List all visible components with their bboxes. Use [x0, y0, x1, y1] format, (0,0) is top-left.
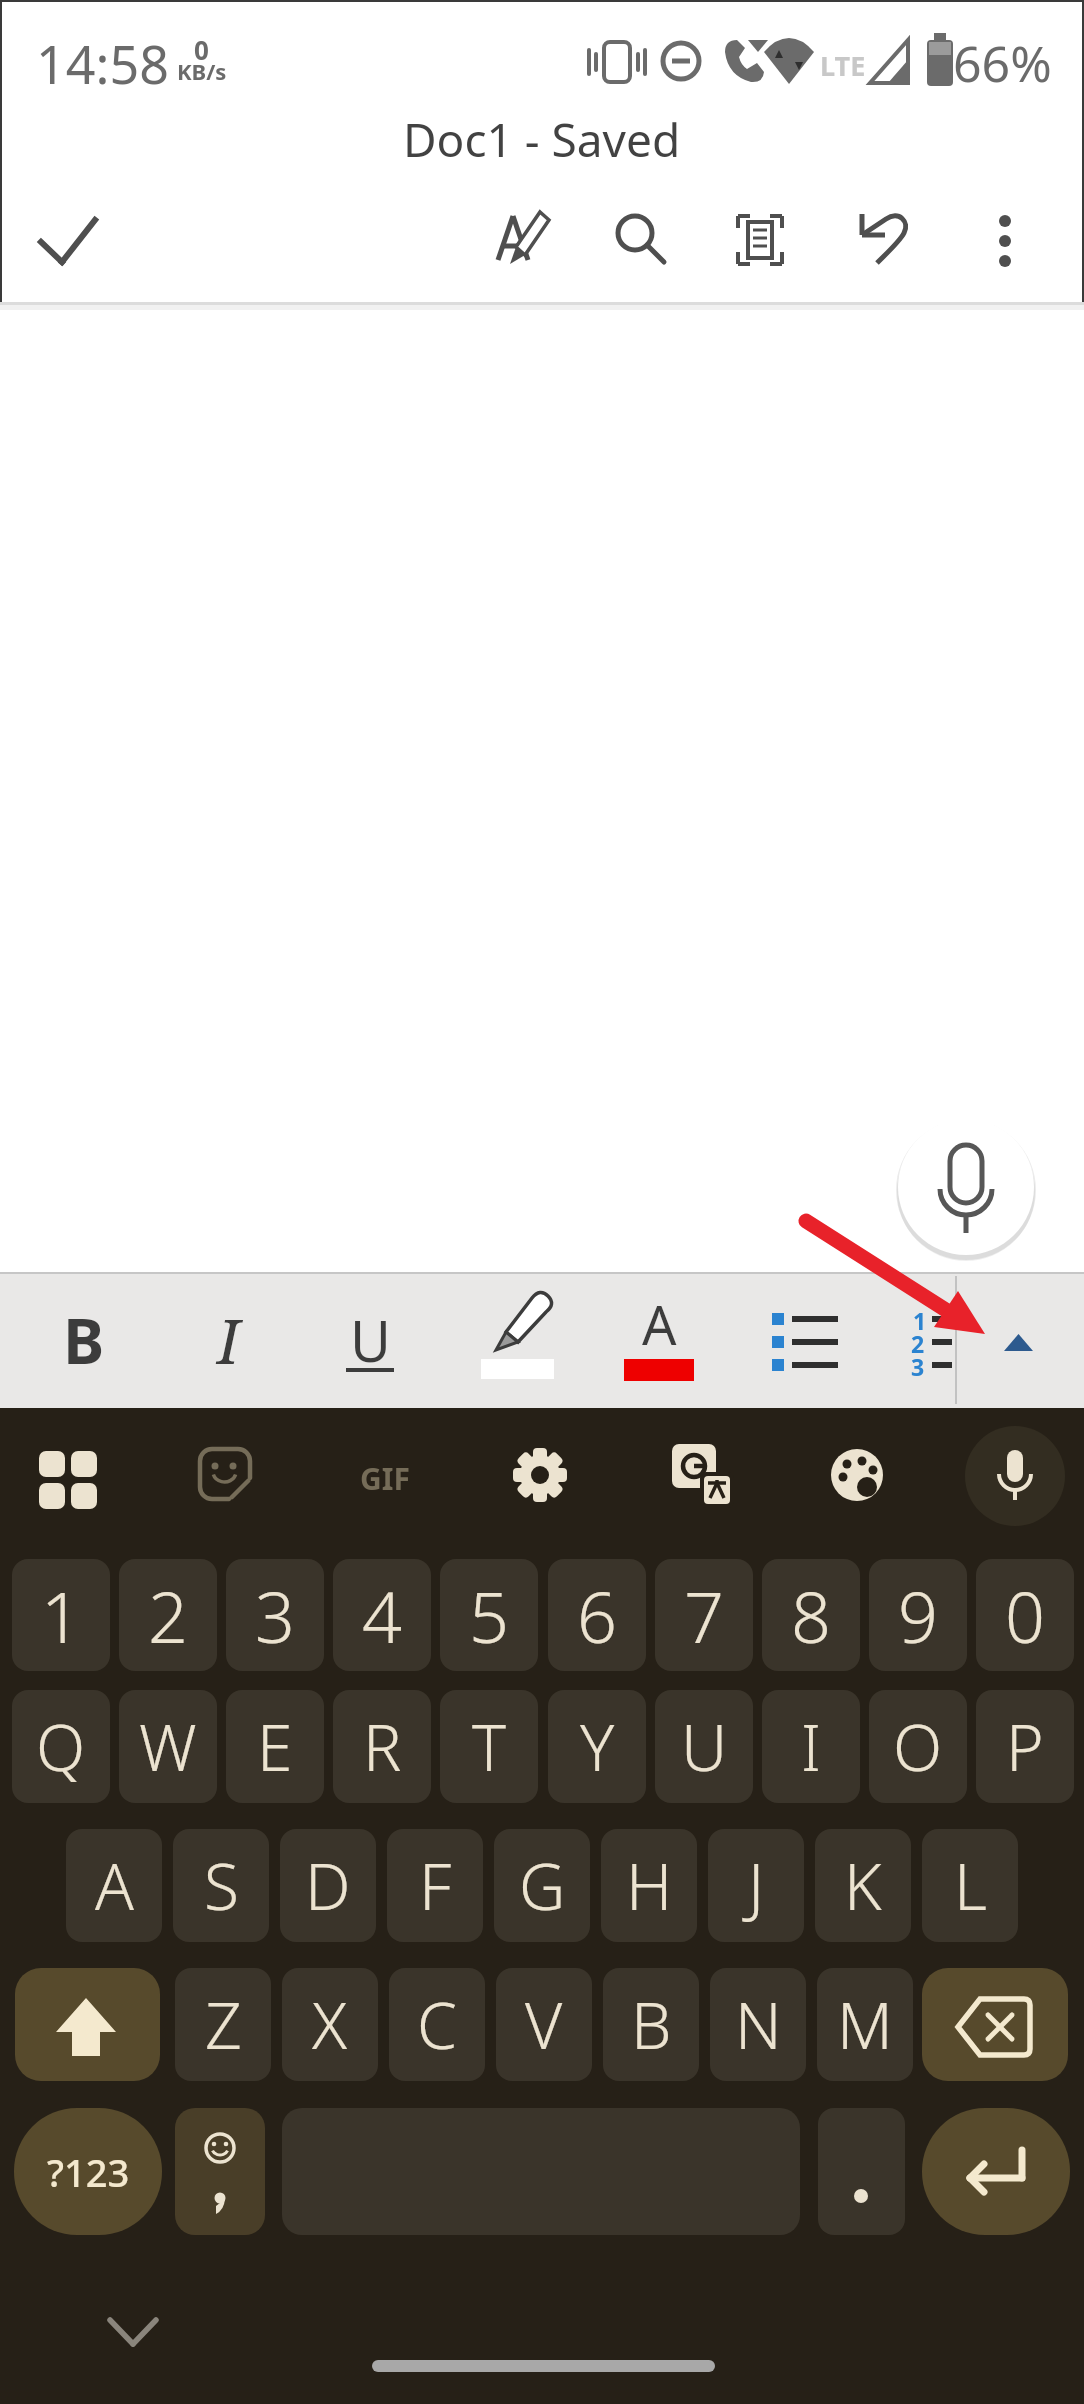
- staticText: 3: [911, 1351, 925, 1382]
- button[interactable]: K: [815, 1829, 911, 1942]
- staticText: Z: [205, 1981, 242, 2068]
- staticText: 6: [577, 1568, 617, 1663]
- staticText: O: [893, 1703, 943, 1790]
- staticText: Doc1 - Saved: [403, 108, 681, 164]
- staticText: 14:58: [36, 28, 169, 99]
- staticText: LTE: [820, 47, 866, 84]
- button[interactable]: 4: [333, 1559, 431, 1671]
- button[interactable]: Z: [175, 1968, 271, 2081]
- button[interactable]: [818, 2108, 905, 2235]
- button[interactable]: R: [333, 1690, 431, 1803]
- button[interactable]: [652, 1430, 748, 1526]
- staticText: 8: [791, 1568, 831, 1663]
- button[interactable]: L: [922, 1829, 1018, 1942]
- button[interactable]: ?123: [14, 2108, 162, 2235]
- staticText: D: [305, 1842, 351, 1929]
- button[interactable]: X: [282, 1968, 378, 2081]
- button[interactable]: [965, 1426, 1065, 1526]
- button[interactable]: Q: [12, 1690, 110, 1803]
- button[interactable]: [480, 200, 560, 280]
- button[interactable]: [177, 1430, 273, 1526]
- staticText: T: [472, 1703, 506, 1790]
- button[interactable]: 8: [762, 1559, 860, 1671]
- staticText: 5: [469, 1568, 509, 1663]
- button[interactable]: [175, 2108, 265, 2235]
- button[interactable]: T: [440, 1690, 538, 1803]
- button[interactable]: P: [976, 1690, 1074, 1803]
- button[interactable]: [809, 1430, 905, 1526]
- staticText: P: [1006, 1703, 1044, 1790]
- staticText: V: [525, 1981, 563, 2068]
- staticText: F: [419, 1842, 452, 1929]
- button[interactable]: 7: [655, 1559, 753, 1671]
- staticText: 3: [255, 1568, 295, 1663]
- button[interactable]: 5: [440, 1559, 538, 1671]
- button[interactable]: 2: [119, 1559, 217, 1671]
- button[interactable]: [975, 1280, 1075, 1400]
- button[interactable]: Y: [548, 1690, 646, 1803]
- button[interactable]: [898, 1119, 1034, 1255]
- button[interactable]: A: [594, 1280, 724, 1400]
- button[interactable]: O: [869, 1690, 967, 1803]
- staticText: 0: [194, 32, 209, 67]
- button[interactable]: 6: [548, 1559, 646, 1671]
- button[interactable]: F: [387, 1829, 483, 1942]
- button[interactable]: A: [66, 1829, 162, 1942]
- button[interactable]: N: [710, 1968, 806, 2081]
- staticText: Y: [580, 1703, 615, 1790]
- button[interactable]: [965, 200, 1045, 280]
- button[interactable]: M: [817, 1968, 913, 2081]
- button[interactable]: 1: [12, 1559, 110, 1671]
- staticText: X: [312, 1981, 348, 2068]
- button[interactable]: GIF: [337, 1430, 433, 1526]
- button[interactable]: [15, 1968, 160, 2081]
- button[interactable]: U: [655, 1690, 753, 1803]
- staticText: J: [748, 1842, 765, 1929]
- button[interactable]: [922, 1968, 1068, 2081]
- button[interactable]: [736, 1280, 866, 1400]
- staticText: A: [95, 1842, 134, 1929]
- staticText: I: [217, 1298, 240, 1382]
- staticText: C: [417, 1981, 457, 2068]
- button[interactable]: [25, 200, 105, 280]
- staticText: L: [954, 1842, 987, 1929]
- staticText: N: [735, 1981, 782, 2068]
- staticText: 9: [898, 1568, 938, 1663]
- staticText: G: [519, 1842, 566, 1929]
- button[interactable]: G: [494, 1829, 590, 1942]
- button[interactable]: 0: [976, 1559, 1074, 1671]
- button[interactable]: J: [708, 1829, 804, 1942]
- button[interactable]: 9: [869, 1559, 967, 1671]
- staticText: 1: [41, 1568, 81, 1663]
- staticText: W: [139, 1703, 197, 1790]
- button[interactable]: E: [226, 1690, 324, 1803]
- button[interactable]: B: [603, 1968, 699, 2081]
- button[interactable]: W: [119, 1690, 217, 1803]
- button[interactable]: B: [24, 1280, 144, 1400]
- button[interactable]: U: [310, 1280, 430, 1400]
- button[interactable]: S: [173, 1829, 269, 1942]
- button[interactable]: [600, 200, 680, 280]
- button[interactable]: I: [762, 1690, 860, 1803]
- staticText: K: [844, 1842, 882, 1929]
- button[interactable]: I: [168, 1280, 288, 1400]
- button[interactable]: [872, 1280, 954, 1400]
- staticText: H: [626, 1842, 673, 1929]
- button[interactable]: [18, 1430, 114, 1526]
- staticText: 0: [1005, 1568, 1045, 1663]
- button[interactable]: V: [496, 1968, 592, 2081]
- staticText: 1: [913, 1305, 927, 1336]
- button[interactable]: [492, 1430, 588, 1526]
- button[interactable]: [452, 1280, 582, 1400]
- staticText: B: [63, 1298, 105, 1382]
- staticText: 2: [148, 1568, 188, 1663]
- button[interactable]: D: [280, 1829, 376, 1942]
- button[interactable]: [720, 200, 800, 280]
- staticText: U: [350, 1302, 391, 1378]
- button[interactable]: H: [601, 1829, 697, 1942]
- button[interactable]: 3: [226, 1559, 324, 1671]
- button[interactable]: [840, 200, 920, 280]
- button[interactable]: C: [389, 1968, 485, 2081]
- button[interactable]: [922, 2108, 1070, 2235]
